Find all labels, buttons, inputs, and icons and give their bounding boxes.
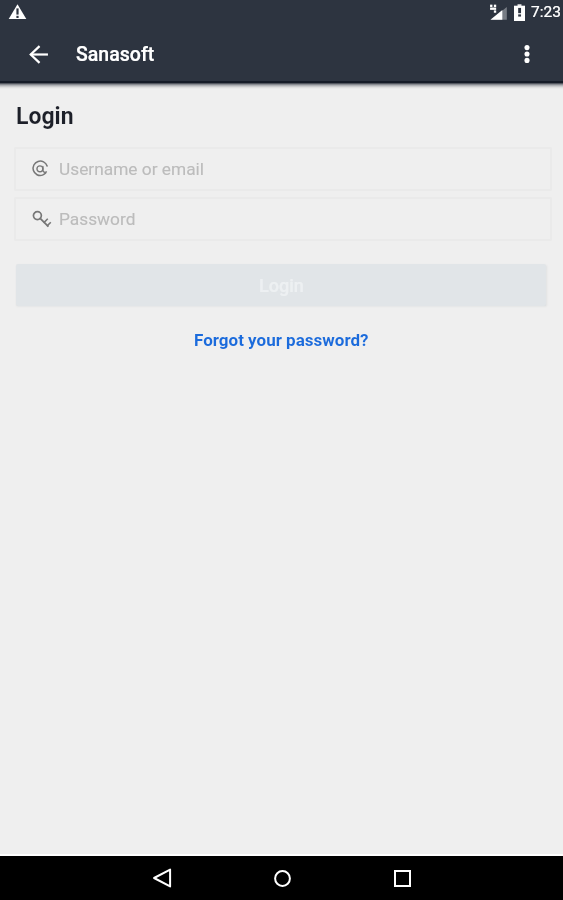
staticText: Sanasoft (76, 43, 155, 66)
button[interactable]: Username or email (15, 148, 551, 190)
staticText: Login (259, 275, 304, 296)
button[interactable]: Forgot your password? (186, 326, 377, 354)
staticText: Password (59, 209, 136, 229)
button[interactable]: Recent apps (378, 856, 426, 900)
button[interactable]: Home (258, 856, 306, 900)
button[interactable]: Navigate up (14, 30, 62, 78)
button[interactable]: Password (15, 198, 551, 240)
button[interactable]: More options (503, 30, 551, 78)
staticText: Login (16, 103, 74, 130)
button[interactable]: Back (138, 856, 186, 900)
staticText: Username or email (59, 159, 204, 179)
staticText: 7:23 (531, 3, 561, 21)
